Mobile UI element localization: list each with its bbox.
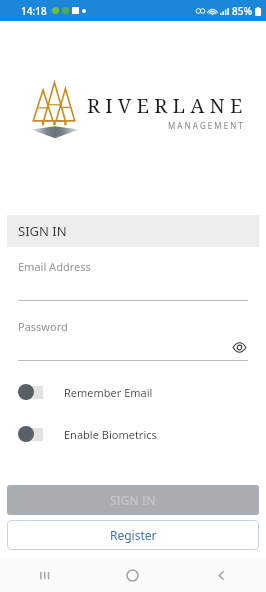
staticText: Password <box>18 319 68 334</box>
button[interactable]: Back <box>177 558 266 592</box>
button[interactable]: Show password <box>230 338 248 356</box>
staticText: SIGN IN <box>18 222 67 240</box>
staticText: SIGN IN <box>110 492 156 508</box>
staticText: 14:18 <box>21 4 47 18</box>
staticText: M A N A G E M E N T <box>168 120 243 131</box>
button[interactable]: Email Address <box>18 259 248 301</box>
button[interactable]: Recents <box>0 558 88 592</box>
staticText: Email Address <box>18 259 91 274</box>
staticText: 85% <box>232 4 252 18</box>
button[interactable]: SIGN IN <box>7 485 259 515</box>
staticText: Register <box>110 527 157 543</box>
staticText: Remember Email <box>64 385 153 400</box>
button[interactable]: Enable Biometrics <box>18 421 248 447</box>
staticText: Enable Biometrics <box>64 427 157 442</box>
button[interactable]: Register <box>7 520 259 550</box>
button[interactable]: Password <box>18 319 248 361</box>
button[interactable]: Home <box>88 558 177 592</box>
button[interactable]: Remember Email <box>18 379 248 405</box>
staticText: R I V E R L A N E <box>87 92 243 119</box>
